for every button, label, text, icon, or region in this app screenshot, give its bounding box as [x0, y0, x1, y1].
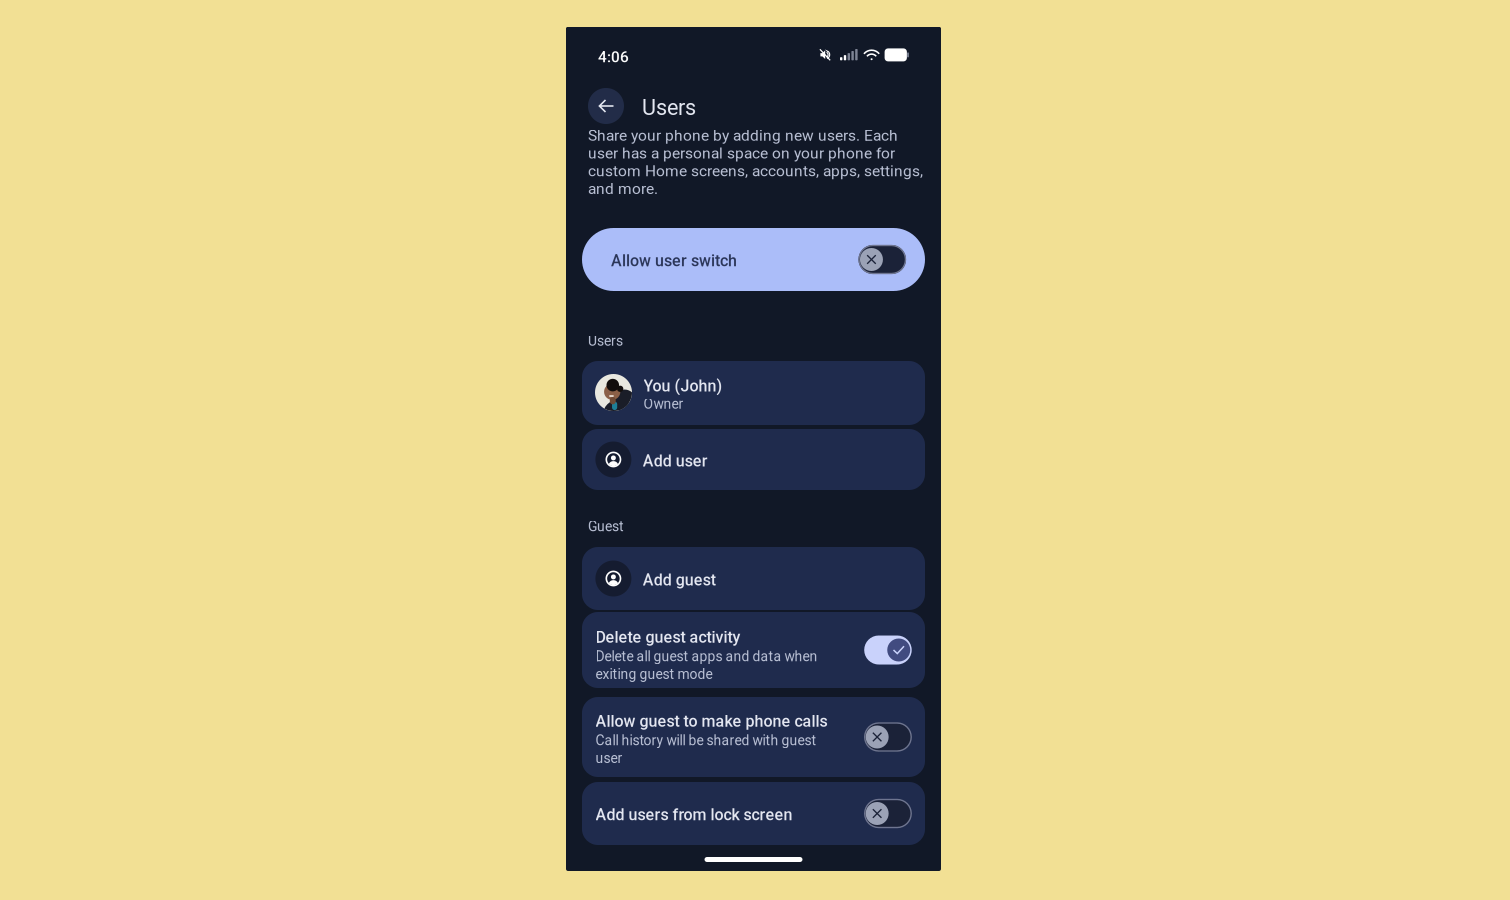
staticText: Users — [588, 333, 623, 349]
staticText: Owner — [644, 396, 684, 412]
button[interactable]: Add guest — [582, 547, 925, 610]
staticText: Users — [642, 95, 696, 120]
button[interactable]: You (John) — [582, 361, 925, 425]
button[interactable]: Allow user switch — [582, 228, 925, 291]
staticText: Guest — [588, 518, 624, 535]
staticText: Allow guest to make phone calls — [596, 712, 828, 731]
staticText: Allow user switch — [611, 251, 737, 270]
button[interactable]: Allow guest to make phone calls — [582, 697, 925, 777]
staticText: exiting guest mode — [596, 666, 713, 682]
staticText: Add users from lock screen — [596, 805, 793, 824]
staticText: Add user — [643, 452, 708, 470]
staticText: Delete guest activity — [596, 628, 741, 647]
button[interactable]: Add users from lock screen — [582, 782, 925, 845]
button[interactable]: Add user — [582, 429, 925, 490]
button[interactable]: Delete guest activity — [582, 612, 925, 688]
staticText: Delete all guest apps and data when — [596, 648, 818, 665]
staticText: 4:06 — [598, 48, 629, 66]
button[interactable]: Back — [588, 88, 624, 124]
staticText: You (John) — [644, 377, 723, 395]
staticText: Share your phone by adding new users. Ea… — [588, 126, 923, 198]
staticText: user — [596, 750, 623, 766]
staticText: Call history will be shared with guest — [596, 732, 817, 749]
staticText: Add guest — [643, 571, 716, 589]
